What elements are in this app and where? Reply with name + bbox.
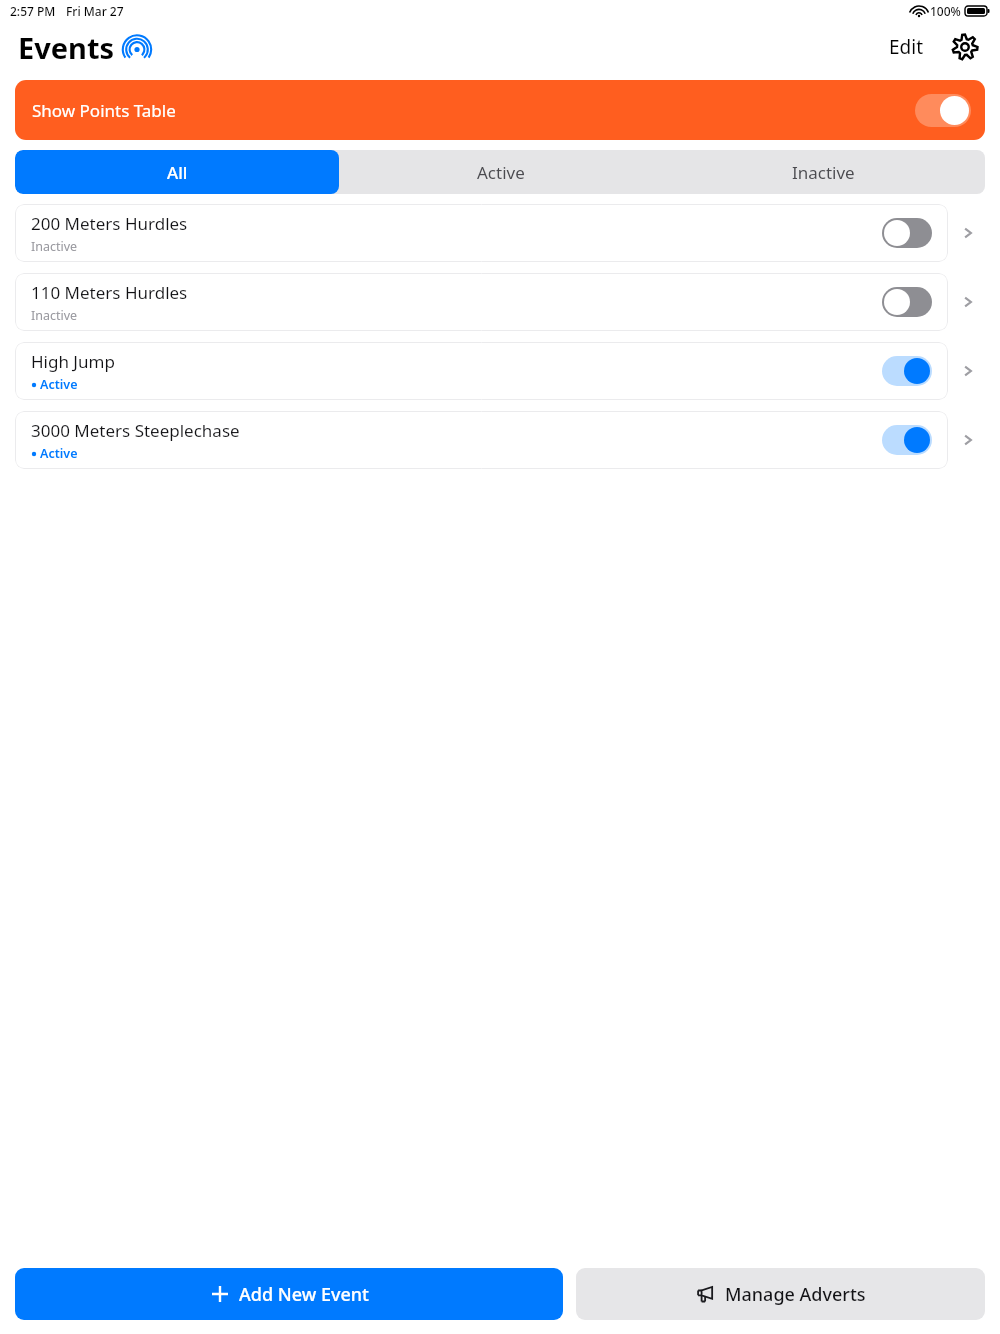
button[interactable]: Manage Adverts bbox=[576, 1268, 985, 1320]
staticText: 110 Meters Hurdles bbox=[31, 281, 188, 304]
button[interactable]: Show points table toggle bbox=[915, 94, 971, 127]
staticText: Active bbox=[477, 161, 525, 184]
button[interactable]: Open High Jump bbox=[948, 342, 988, 400]
button[interactable]: Show Points Table bbox=[15, 80, 985, 140]
button[interactable]: Active bbox=[339, 150, 662, 194]
staticText: 200 Meters Hurdles bbox=[31, 212, 188, 235]
staticText: Show Points Table bbox=[32, 99, 176, 122]
staticText: Inactive bbox=[31, 238, 78, 255]
staticText: All bbox=[167, 161, 188, 184]
staticText: 3000 Meters Steeplechase bbox=[31, 419, 240, 442]
staticText: Add New Event bbox=[239, 1282, 369, 1307]
button[interactable]: 200 Meters Hurdles toggle bbox=[882, 218, 932, 248]
button[interactable]: Open 200 Meters Hurdles bbox=[948, 204, 988, 262]
button[interactable]: High Jump toggle bbox=[882, 356, 932, 386]
button[interactable]: 200 Meters Hurdles bbox=[15, 204, 948, 262]
staticText: Manage Adverts bbox=[725, 1282, 866, 1307]
staticText: Inactive bbox=[792, 161, 855, 184]
staticText: 2:57 PM bbox=[10, 3, 56, 19]
button[interactable]: Settings bbox=[948, 30, 982, 64]
button[interactable]: Add New Event bbox=[15, 1268, 563, 1320]
staticText: Events bbox=[18, 28, 115, 67]
button[interactable]: Inactive bbox=[662, 150, 985, 194]
staticText: Inactive bbox=[31, 307, 78, 324]
staticText: Active bbox=[40, 376, 78, 393]
button[interactable]: 3000 Meters Steeplechase bbox=[15, 411, 948, 469]
button[interactable]: 110 Meters Hurdles bbox=[15, 273, 948, 331]
staticText: High Jump bbox=[31, 350, 115, 373]
staticText: Fri Mar 27 bbox=[66, 3, 124, 19]
staticText: 100% bbox=[930, 3, 961, 19]
staticText: Active bbox=[40, 445, 78, 462]
button[interactable]: High Jump bbox=[15, 342, 948, 400]
staticText: Edit bbox=[889, 34, 924, 60]
button[interactable]: 3000 Meters Steeplechase toggle bbox=[882, 425, 932, 455]
button[interactable]: Open 110 Meters Hurdles bbox=[948, 273, 988, 331]
button[interactable]: All bbox=[15, 150, 339, 194]
button[interactable]: Open 3000 Meters Steeplechase bbox=[948, 411, 988, 469]
button[interactable]: Edit bbox=[883, 30, 930, 64]
button[interactable]: 110 Meters Hurdles toggle bbox=[882, 287, 932, 317]
